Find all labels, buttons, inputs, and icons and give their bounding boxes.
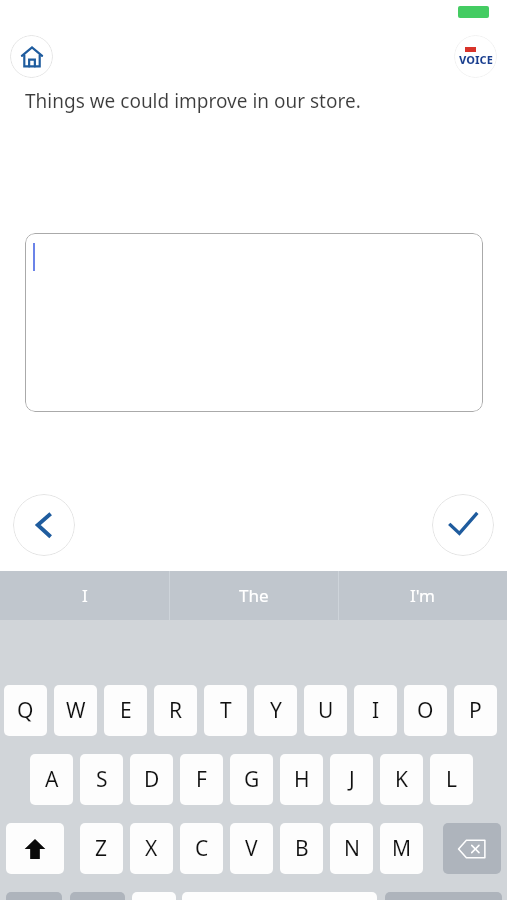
staticText: G: [244, 765, 260, 794]
button[interactable]: I'm: [338, 571, 507, 620]
button[interactable]: V: [230, 823, 273, 874]
button[interactable]: C: [180, 823, 223, 874]
staticText: S: [96, 765, 108, 794]
button[interactable]: Q: [4, 685, 47, 736]
button[interactable]: Voice: [454, 35, 497, 78]
staticText: R: [169, 696, 183, 725]
button[interactable]: Backspace: [443, 823, 501, 874]
staticText: M: [392, 834, 412, 863]
staticText: O: [417, 696, 434, 725]
button[interactable]: P: [454, 685, 497, 736]
staticText: U: [318, 696, 334, 725]
button[interactable]: D: [130, 754, 173, 805]
button[interactable]: The: [169, 571, 338, 620]
staticText: D: [144, 765, 160, 794]
button[interactable]: Confirm: [432, 494, 494, 556]
button[interactable]: Back: [13, 494, 75, 556]
staticText: V: [245, 834, 258, 863]
button[interactable]: L: [430, 754, 473, 805]
staticText: H: [294, 765, 310, 794]
button[interactable]: T: [204, 685, 247, 736]
button[interactable]: O: [404, 685, 447, 736]
button[interactable]: W: [54, 685, 97, 736]
button[interactable]: G: [230, 754, 273, 805]
staticText: I: [82, 584, 88, 607]
button[interactable]: Shift: [6, 823, 64, 874]
button[interactable]: J: [330, 754, 373, 805]
button[interactable]: 123: [6, 892, 62, 900]
button[interactable]: K: [380, 754, 423, 805]
staticText: A: [45, 765, 59, 794]
button[interactable]: F: [180, 754, 223, 805]
staticText: N: [344, 834, 360, 863]
button[interactable]: R: [154, 685, 197, 736]
button[interactable]: space: [182, 892, 377, 900]
staticText: The: [239, 584, 269, 607]
button[interactable]: I: [0, 571, 169, 620]
staticText: I'm: [410, 584, 435, 607]
button[interactable]: B: [280, 823, 323, 874]
staticText: E: [120, 696, 132, 725]
button[interactable]: X: [130, 823, 173, 874]
staticText: Y: [270, 696, 282, 725]
staticText: Things we could improve in our store.: [25, 88, 361, 114]
button[interactable]: Z: [80, 823, 123, 874]
button[interactable]: Home: [10, 35, 53, 78]
button[interactable]: S: [80, 754, 123, 805]
staticText: X: [145, 834, 158, 863]
button[interactable]: [25, 233, 483, 412]
staticText: VOICE: [459, 52, 493, 67]
button[interactable]: Y: [254, 685, 297, 736]
staticText: L: [446, 765, 458, 794]
staticText: F: [196, 765, 207, 794]
staticText: Q: [17, 696, 34, 725]
staticText: T: [220, 696, 232, 725]
button[interactable]: U: [304, 685, 347, 736]
button[interactable]: return: [385, 892, 502, 900]
staticText: K: [395, 765, 408, 794]
button[interactable]: A: [30, 754, 73, 805]
button[interactable]: H: [280, 754, 323, 805]
button[interactable]: E: [104, 685, 147, 736]
button[interactable]: Emoji: [70, 892, 125, 900]
button[interactable]: N: [330, 823, 373, 874]
staticText: W: [66, 696, 86, 725]
staticText: C: [195, 834, 209, 863]
staticText: Z: [95, 834, 108, 863]
button[interactable]: Voice input: [132, 892, 176, 900]
staticText: J: [349, 765, 355, 794]
staticText: B: [295, 834, 309, 863]
staticText: I: [372, 696, 380, 725]
button[interactable]: I: [354, 685, 397, 736]
staticText: P: [469, 696, 482, 725]
button[interactable]: M: [380, 823, 423, 874]
